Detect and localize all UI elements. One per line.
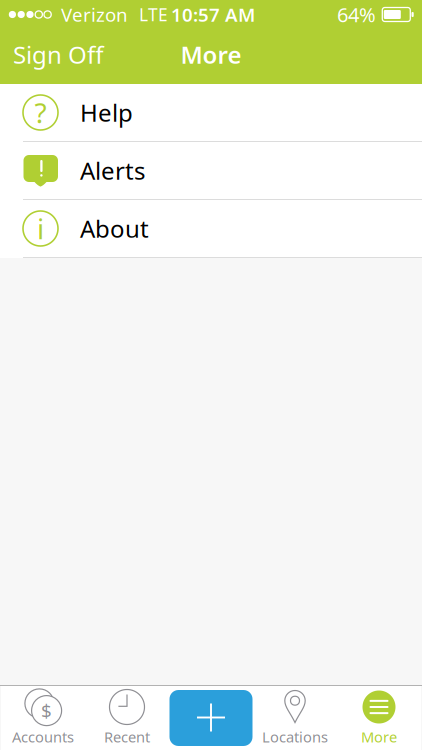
button[interactable]: i <box>23 200 422 257</box>
button[interactable]: Locations <box>253 686 337 750</box>
staticText: Recent <box>104 727 150 746</box>
button[interactable]: Add <box>169 690 252 746</box>
button[interactable]: Recent <box>85 686 169 750</box>
staticText: ? <box>34 94 46 131</box>
staticText: 64% <box>337 1 376 28</box>
staticText: Alerts <box>80 155 145 186</box>
staticText: Help <box>80 97 133 128</box>
staticText: 10:57 AM <box>171 2 255 27</box>
staticText: Sign Off <box>13 39 104 70</box>
staticText: Verizon <box>61 2 128 27</box>
staticText: $ <box>41 698 52 723</box>
staticText: Locations <box>262 727 328 746</box>
button[interactable]: More <box>337 686 421 750</box>
button[interactable]: Sign Off <box>0 33 117 80</box>
staticText: Accounts <box>12 727 74 746</box>
button[interactable]: Alerts <box>23 142 422 199</box>
button[interactable]: ? <box>23 84 422 141</box>
staticText: More <box>361 727 397 746</box>
staticText: i <box>37 210 44 247</box>
staticText: About <box>80 213 149 244</box>
staticText: LTE <box>139 3 168 26</box>
staticText: More <box>180 39 241 70</box>
button[interactable]: $ <box>1 686 85 750</box>
